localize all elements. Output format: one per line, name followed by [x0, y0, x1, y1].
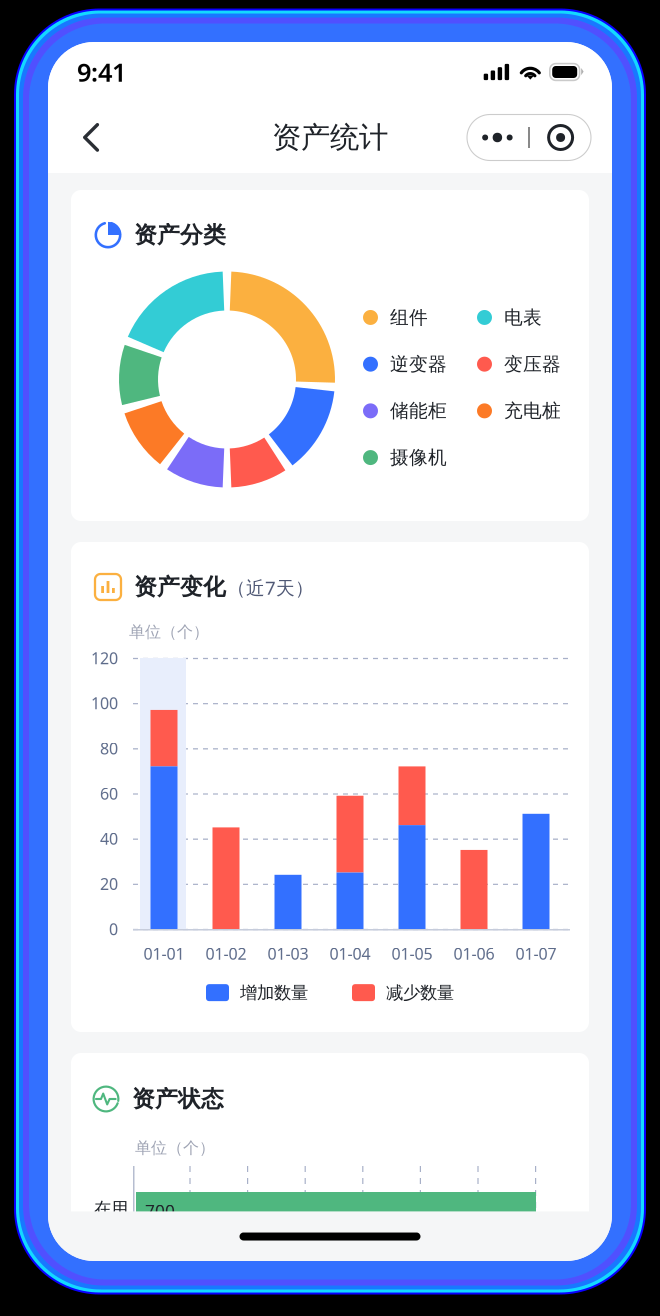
staticText: 逆变器	[390, 353, 447, 376]
staticText: 01-03	[267, 943, 308, 964]
staticText: 9:41	[77, 55, 126, 89]
staticText: 资产变化	[134, 573, 226, 601]
staticText: 80	[100, 738, 118, 759]
staticText: 01-07	[515, 943, 556, 964]
staticText: 资产状态	[132, 1085, 224, 1113]
staticText: 组件	[390, 306, 428, 329]
staticText: 摄像机	[390, 446, 447, 469]
staticText: 储能柜	[390, 399, 447, 422]
staticText: 资产分类	[134, 221, 226, 249]
staticText: 01-06	[453, 943, 494, 964]
staticText: 20	[100, 873, 118, 894]
staticText: 120	[91, 647, 118, 669]
staticText: 100	[91, 692, 118, 714]
staticText: 资产统计	[272, 119, 388, 155]
staticText: 单位（个）	[129, 622, 209, 642]
staticText: 40	[100, 828, 118, 849]
staticText: 0	[109, 918, 118, 940]
staticText: 700	[145, 1199, 175, 1222]
staticText: 单位（个）	[135, 1138, 215, 1158]
staticText: （近7天）	[227, 575, 314, 600]
staticText: 01-01	[143, 943, 184, 964]
button[interactable]: Back	[48, 109, 119, 165]
button[interactable]: Menu	[467, 114, 612, 160]
staticText: 在用	[94, 1198, 128, 1219]
staticText: 变压器	[504, 353, 561, 376]
staticText: 01-02	[205, 943, 246, 964]
staticText: 充电桩	[504, 399, 561, 422]
staticText: 电表	[504, 306, 542, 329]
staticText: 减少数量	[386, 982, 454, 1003]
staticText: 60	[100, 783, 118, 804]
staticText: 01-04	[329, 943, 370, 964]
staticText: 增加数量	[240, 982, 308, 1003]
staticText: 01-05	[391, 943, 432, 964]
